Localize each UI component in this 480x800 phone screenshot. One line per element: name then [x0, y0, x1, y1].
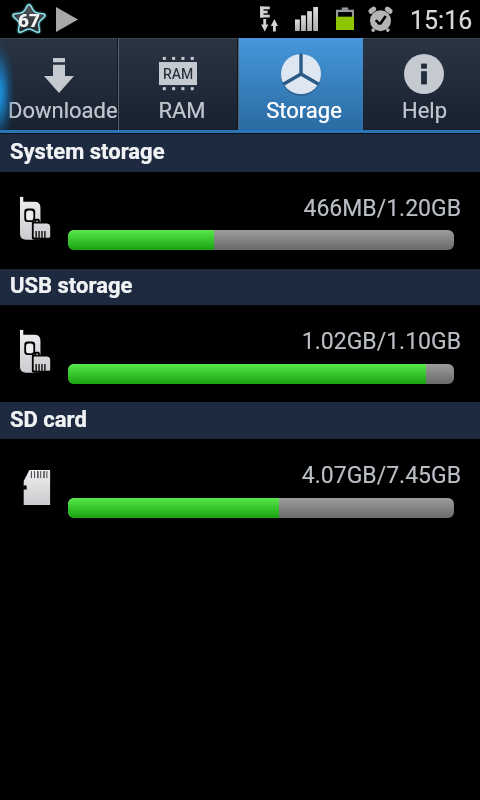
button[interactable]: Storage	[239, 38, 363, 130]
button[interactable]: Help	[363, 38, 480, 130]
button[interactable]: 466MB/1.20GB	[0, 172, 480, 269]
staticText: 1.02GB/1.10GB	[0, 328, 461, 355]
staticText: USB storage	[10, 273, 133, 299]
button[interactable]: Downloaded	[0, 38, 119, 130]
staticText: SD card	[10, 407, 87, 433]
button[interactable]: 4.07GB/7.45GB	[0, 439, 480, 536]
staticText: 466MB/1.20GB	[0, 195, 461, 222]
staticText: Downloaded	[8, 98, 117, 124]
staticText: RAM	[163, 66, 194, 82]
staticText: 15:16	[410, 6, 473, 35]
staticText: 4.07GB/7.45GB	[0, 462, 461, 489]
button[interactable]: 1.02GB/1.10GB	[0, 305, 480, 402]
staticText: Help	[371, 98, 478, 124]
staticText: 67	[18, 9, 40, 31]
staticText: System storage	[10, 139, 165, 165]
button[interactable]: RAM	[119, 38, 239, 130]
staticText: RAM	[127, 98, 237, 124]
staticText: Storage	[247, 98, 361, 124]
